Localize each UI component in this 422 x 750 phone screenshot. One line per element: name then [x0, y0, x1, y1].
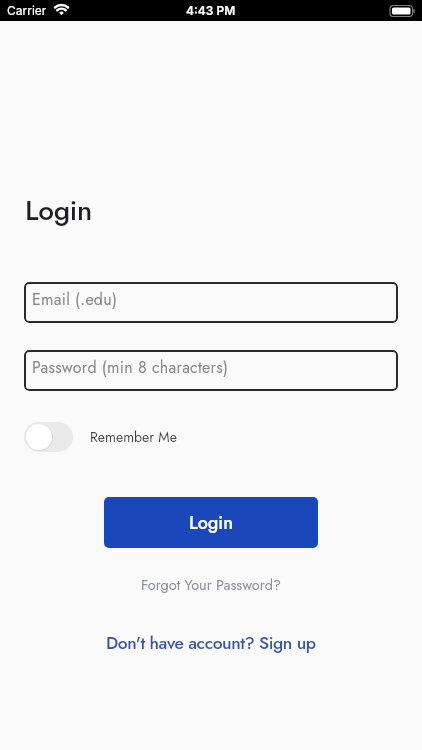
button[interactable]	[24, 422, 73, 452]
button[interactable]: Don't have account? Sign up	[106, 630, 316, 655]
button[interactable]: Email (.edu)	[24, 282, 398, 323]
staticText: Password (min 8 characters)	[32, 356, 229, 379]
button[interactable]: Login	[104, 497, 318, 548]
staticText: Login	[25, 190, 92, 230]
staticText: Carrier	[7, 3, 47, 18]
button[interactable]: Forgot Your Password?	[141, 574, 282, 595]
staticText: 4:43 PM	[186, 3, 236, 18]
staticText: Email (.edu)	[32, 288, 118, 311]
staticText: Login	[189, 510, 233, 536]
button[interactable]: Password (min 8 characters)	[24, 350, 398, 391]
staticText: Remember Me	[90, 427, 177, 447]
